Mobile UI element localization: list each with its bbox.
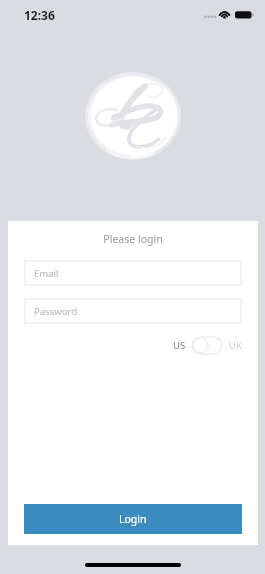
staticText: Please login [8, 232, 258, 246]
button[interactable]: Region toggle US UK [192, 337, 222, 354]
button[interactable]: Email [25, 261, 241, 285]
button[interactable]: UK [229, 339, 242, 352]
staticText: US [173, 339, 186, 352]
staticText: 12:36 [24, 7, 55, 23]
staticText: UK [229, 339, 242, 352]
button[interactable]: Password [25, 299, 241, 323]
staticText: Login [119, 512, 147, 526]
button[interactable]: US [173, 339, 186, 352]
staticText: Password [34, 305, 77, 318]
staticText: Email [34, 267, 59, 280]
button[interactable]: Login [24, 504, 242, 534]
